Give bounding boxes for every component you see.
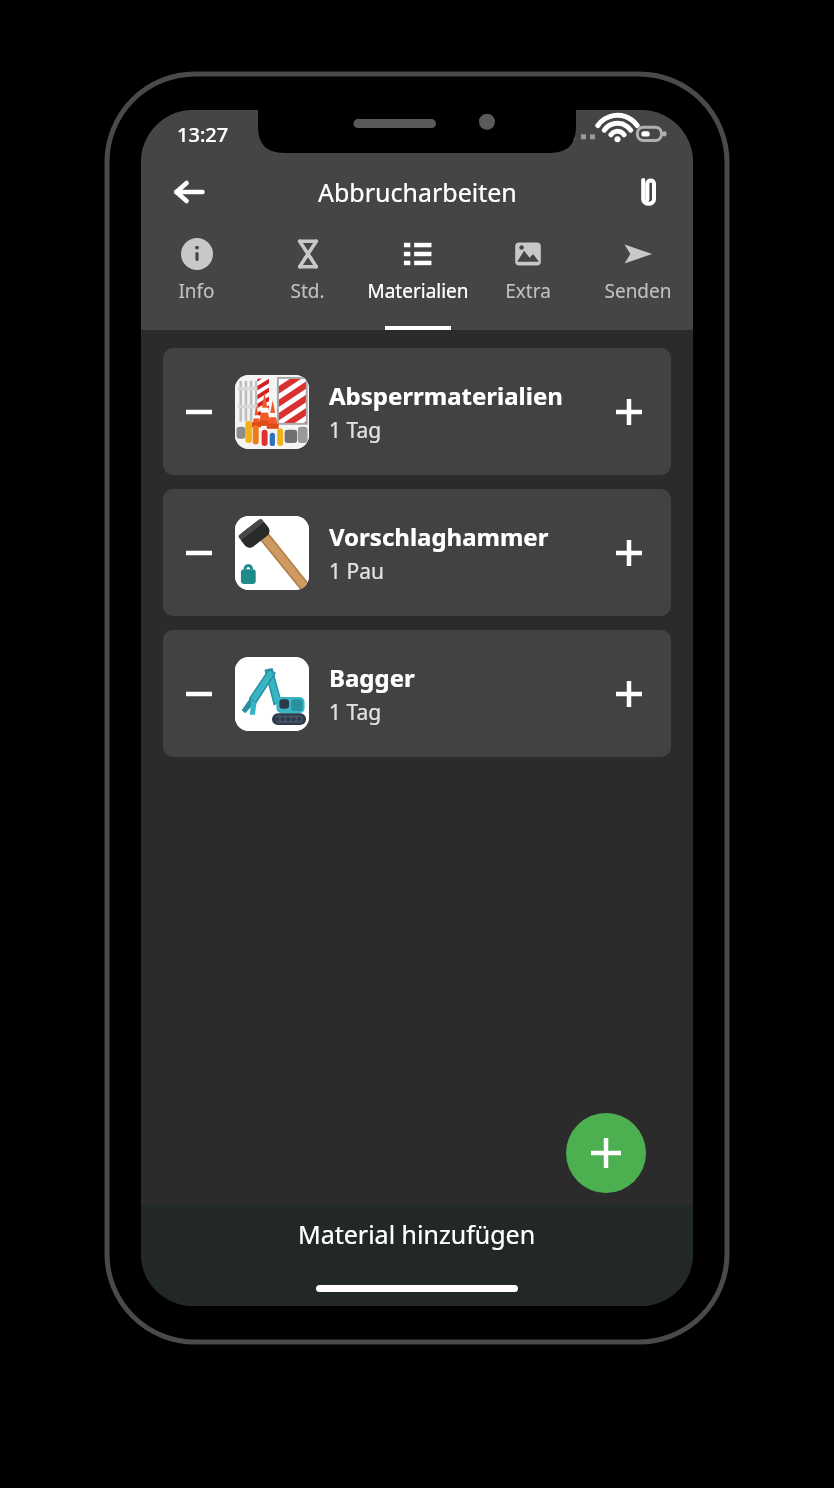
staticText: 13:27 — [177, 121, 229, 148]
button[interactable]: Material hinzufügen — [141, 1205, 693, 1306]
button[interactable]: Senden — [583, 226, 693, 330]
staticText: Bagger — [329, 661, 415, 694]
button[interactable]: Decrease — [163, 376, 235, 448]
button[interactable]: Info — [141, 226, 252, 330]
staticText: Material hinzufügen — [298, 1217, 536, 1251]
button[interactable]: Increase — [593, 376, 665, 448]
button[interactable]: Decrease — [163, 489, 671, 616]
staticText: 1 Pau — [329, 557, 384, 586]
button[interactable]: Decrease — [163, 517, 235, 589]
staticText: Std. — [290, 278, 325, 304]
button[interactable]: Increase — [593, 658, 665, 730]
button[interactable]: Extra — [473, 226, 583, 330]
button[interactable]: Materialien — [363, 226, 473, 330]
staticText: 1 Tag — [329, 698, 382, 727]
staticText: Extra — [505, 278, 551, 304]
staticText: Senden — [604, 278, 672, 304]
staticText: Vorschlaghammer — [329, 520, 549, 553]
staticText: 1 Tag — [329, 416, 382, 445]
staticText: Abbrucharbeiten — [318, 175, 517, 209]
button[interactable]: Attach — [621, 165, 675, 219]
staticText: Info — [178, 278, 215, 304]
staticText: Absperrmaterialien — [329, 379, 563, 412]
button[interactable]: Decrease — [163, 630, 671, 757]
button[interactable]: Back — [161, 164, 217, 220]
button[interactable]: Decrease — [163, 658, 235, 730]
staticText: Materialien — [367, 278, 469, 304]
button[interactable]: Add material — [566, 1113, 646, 1193]
button[interactable]: Std. — [252, 226, 363, 330]
button[interactable]: Increase — [593, 517, 665, 589]
button[interactable]: Decrease — [163, 348, 671, 475]
